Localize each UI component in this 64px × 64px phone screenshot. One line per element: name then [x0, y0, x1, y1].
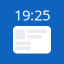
staticText: 19:25	[14, 5, 50, 24]
